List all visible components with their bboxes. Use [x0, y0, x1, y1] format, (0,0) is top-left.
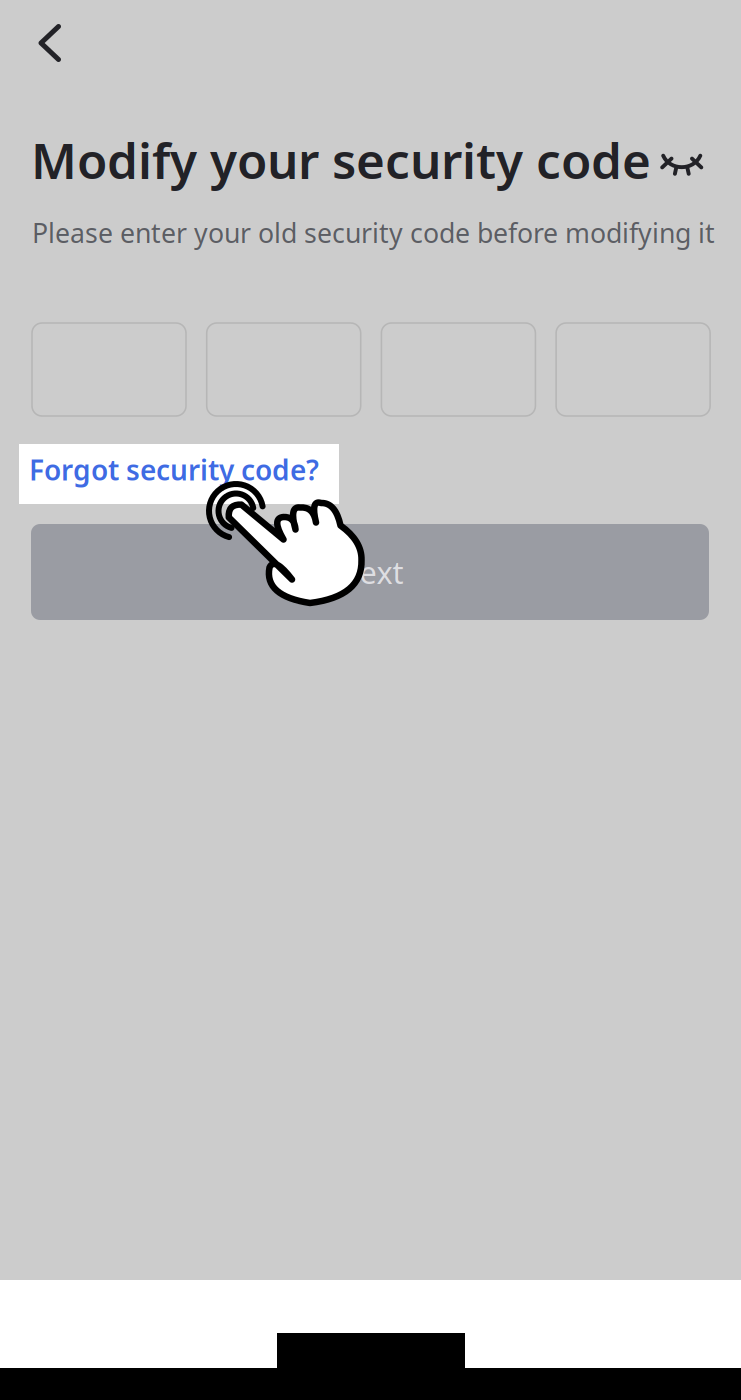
button[interactable]: Forgot security code? [19, 444, 339, 504]
staticText: Forgot security code? [29, 451, 319, 488]
button[interactable]: Back [13, 6, 87, 80]
button[interactable]: Next [31, 524, 709, 620]
staticText: Next [336, 552, 403, 592]
staticText: Modify your security code [31, 127, 651, 192]
button[interactable]: Show security code [649, 140, 715, 190]
staticText: Please enter your old security code befo… [32, 215, 715, 250]
